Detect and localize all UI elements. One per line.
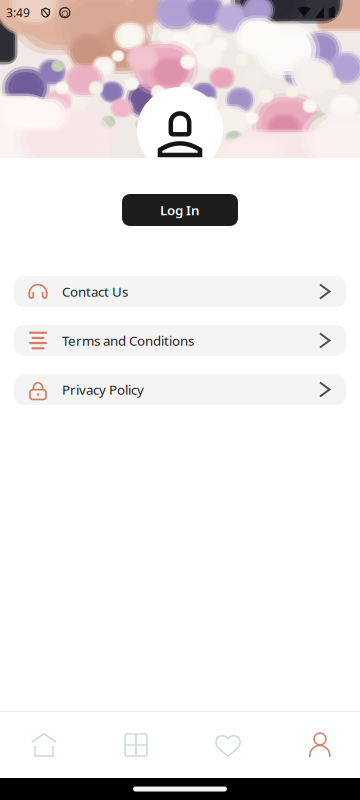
button[interactable]: Categories bbox=[94, 722, 178, 768]
staticText: Privacy Policy bbox=[62, 381, 144, 398]
button[interactable]: Log In bbox=[122, 194, 238, 226]
staticText: 3:49 bbox=[6, 4, 30, 20]
button[interactable]: Profile bbox=[278, 722, 360, 768]
staticText: Terms and Conditions bbox=[62, 332, 194, 349]
staticText: Contact Us bbox=[62, 283, 128, 300]
button[interactable]: Terms and Conditions bbox=[14, 325, 346, 356]
button[interactable]: Favorites bbox=[186, 722, 270, 768]
button[interactable]: Contact Us bbox=[14, 276, 346, 307]
button[interactable]: Privacy Policy bbox=[14, 374, 346, 405]
button[interactable]: Home bbox=[2, 722, 86, 768]
staticText: Log In bbox=[160, 201, 200, 219]
